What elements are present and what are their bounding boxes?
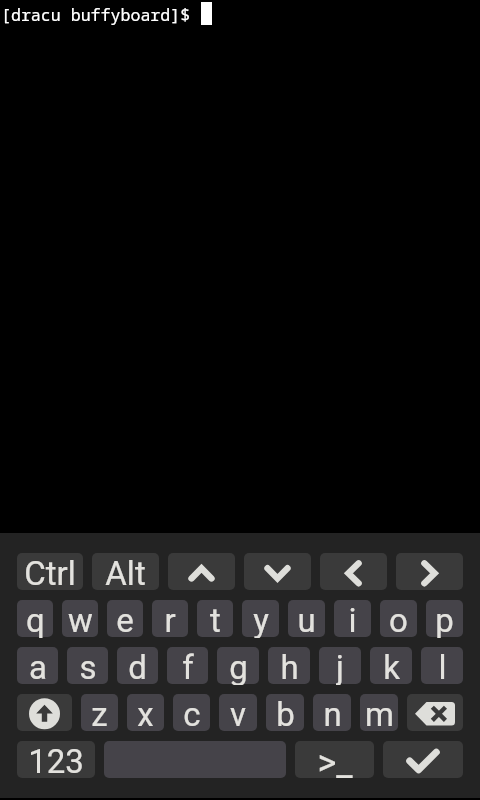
button[interactable]: k <box>370 647 412 684</box>
staticText: k <box>383 648 400 685</box>
staticText: j <box>336 648 344 685</box>
button[interactable]: Alt <box>92 553 159 590</box>
staticText: d <box>128 648 147 685</box>
button[interactable]: p <box>426 600 463 637</box>
staticText: i <box>348 601 357 638</box>
button[interactable]: d <box>117 647 158 684</box>
button[interactable]: l <box>421 647 463 684</box>
staticText: n <box>323 695 342 732</box>
staticText: e <box>116 601 134 638</box>
button[interactable]: Enter <box>383 741 463 778</box>
staticText: x <box>137 695 154 732</box>
staticText: q <box>26 601 45 638</box>
button[interactable]: f <box>167 647 208 684</box>
staticText: o <box>389 601 408 638</box>
button[interactable]: y <box>242 600 279 637</box>
staticText: 123 <box>28 742 84 779</box>
button[interactable]: q <box>17 600 53 637</box>
staticText: c <box>183 695 201 732</box>
button[interactable]: e <box>107 600 143 637</box>
staticText: w <box>68 601 93 638</box>
button[interactable]: Arrow left <box>320 553 387 590</box>
staticText: y <box>253 601 269 638</box>
staticText: t <box>210 601 221 638</box>
button[interactable]: b <box>266 694 304 731</box>
button[interactable]: r <box>152 600 188 637</box>
staticText: u <box>297 601 316 638</box>
staticText: h <box>280 648 299 685</box>
staticText: Ctrl <box>24 554 76 591</box>
button[interactable]: s <box>67 647 108 684</box>
button[interactable]: Arrow down <box>244 553 311 590</box>
button[interactable]: Arrow up <box>168 553 235 590</box>
staticText: v <box>230 695 246 732</box>
button[interactable]: o <box>380 600 417 637</box>
button[interactable]: i <box>334 600 371 637</box>
button[interactable]: x <box>127 694 164 731</box>
button[interactable]: a <box>17 647 58 684</box>
button[interactable]: g <box>217 647 259 684</box>
button[interactable]: v <box>219 694 257 731</box>
button[interactable]: z <box>81 694 118 731</box>
button[interactable]: j <box>319 647 361 684</box>
button[interactable]: >_ <box>295 741 374 778</box>
button[interactable]: Shift <box>17 694 72 731</box>
staticText: r <box>164 601 176 638</box>
button[interactable]: h <box>268 647 310 684</box>
staticText: g <box>229 648 248 685</box>
staticText: p <box>435 601 454 638</box>
button[interactable]: Arrow right <box>396 553 463 590</box>
button[interactable]: c <box>173 694 210 731</box>
staticText: b <box>276 695 295 732</box>
staticText: s <box>79 648 97 685</box>
staticText: >_ <box>317 742 353 779</box>
staticText: a <box>29 648 47 685</box>
button[interactable]: t <box>197 600 233 637</box>
staticText: z <box>91 695 108 732</box>
button[interactable]: Backspace <box>407 694 463 731</box>
button[interactable]: 123 <box>17 741 95 778</box>
staticText: Alt <box>105 554 146 591</box>
button[interactable]: u <box>288 600 325 637</box>
staticText: l <box>438 648 447 685</box>
staticText: [dracu buffyboard]$ <box>1 3 201 26</box>
button[interactable]: m <box>360 694 398 731</box>
button[interactable]: w <box>62 600 98 637</box>
button[interactable]: n <box>313 694 351 731</box>
button[interactable]: Ctrl <box>17 553 83 590</box>
staticText: f <box>182 648 194 685</box>
staticText: m <box>365 695 394 732</box>
